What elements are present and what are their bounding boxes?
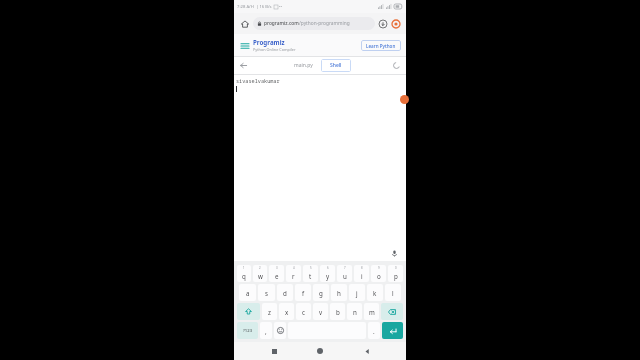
- button[interactable]: 6: [320, 265, 335, 282]
- button[interactable]: Menu: [239, 40, 250, 51]
- button[interactable]: v: [313, 303, 328, 320]
- button[interactable]: f: [295, 284, 311, 301]
- staticText: z: [268, 308, 271, 316]
- button[interactable]: 4: [286, 265, 301, 282]
- button[interactable]: 7: [337, 265, 352, 282]
- button[interactable]: l: [385, 284, 401, 301]
- staticText: 1: [243, 266, 245, 270]
- button[interactable]: Shift: [237, 303, 260, 320]
- button[interactable]: Downloads: [377, 18, 389, 30]
- staticText: 5: [310, 266, 312, 270]
- staticText: d: [283, 289, 287, 297]
- staticText: 9: [378, 266, 380, 270]
- button[interactable]: j: [349, 284, 365, 301]
- staticText: sivaselvakumar: [236, 77, 280, 84]
- staticText: u: [343, 272, 347, 280]
- staticText: s: [265, 289, 268, 297]
- button[interactable]: z: [262, 303, 277, 320]
- staticText: programiz.com: [264, 20, 299, 27]
- staticText: g: [319, 289, 323, 297]
- staticText: r: [292, 272, 295, 280]
- staticText: /python-programming: [299, 20, 350, 27]
- staticText: Programiz: [253, 38, 285, 46]
- button[interactable]: Feedback: [400, 95, 409, 104]
- button[interactable]: ,: [260, 322, 272, 339]
- button[interactable]: n: [347, 303, 362, 320]
- staticText: v: [319, 308, 323, 316]
- staticText: i: [361, 272, 363, 280]
- button[interactable]: h: [331, 284, 347, 301]
- button[interactable]: Back: [238, 60, 249, 71]
- button[interactable]: 0: [388, 265, 403, 282]
- button[interactable]: Emoji: [274, 322, 286, 339]
- button[interactable]: k: [367, 284, 383, 301]
- staticText: q: [242, 272, 246, 280]
- staticText: Learn Python: [366, 43, 396, 49]
- staticText: 0: [395, 266, 397, 270]
- staticText: c: [302, 308, 305, 316]
- staticText: t: [309, 272, 312, 280]
- staticText: ?123: [243, 328, 253, 334]
- staticText: n: [353, 308, 357, 316]
- button[interactable]: Voice input: [389, 248, 400, 259]
- button[interactable]: .: [368, 322, 380, 339]
- staticText: 3: [276, 266, 278, 270]
- staticText: e: [275, 272, 279, 280]
- staticText: | 16 B/s: [256, 4, 272, 10]
- staticText: o: [377, 272, 381, 280]
- button[interactable]: g: [313, 284, 329, 301]
- button[interactable]: 5: [303, 265, 318, 282]
- staticText: w: [258, 272, 263, 280]
- staticText: h: [337, 289, 341, 297]
- button[interactable]: c: [296, 303, 311, 320]
- button[interactable]: Enter: [382, 322, 403, 339]
- button[interactable]: 8: [354, 265, 369, 282]
- button[interactable]: b: [330, 303, 345, 320]
- staticText: f: [302, 289, 305, 297]
- button[interactable]: 1: [237, 265, 251, 282]
- staticText: l: [392, 289, 394, 297]
- button[interactable]: Home: [238, 17, 251, 30]
- staticText: 2: [259, 266, 261, 270]
- staticText: j: [356, 289, 358, 297]
- button[interactable]: Dark mode: [391, 60, 402, 71]
- button[interactable]: s: [258, 284, 275, 301]
- staticText: b: [336, 308, 340, 316]
- staticText: Shell: [330, 62, 342, 69]
- button[interactable]: Symbols: [237, 322, 258, 339]
- button[interactable]: 9: [371, 265, 386, 282]
- button[interactable]: Learn Python: [361, 40, 401, 51]
- staticText: .: [373, 327, 375, 335]
- staticText: main.py: [294, 62, 313, 69]
- staticText: 8: [361, 266, 363, 270]
- staticText: a: [246, 289, 250, 297]
- button[interactable]: d: [277, 284, 293, 301]
- button[interactable]: 3: [269, 265, 284, 282]
- staticText: 4: [293, 266, 295, 270]
- staticText: 7: [344, 266, 346, 270]
- staticText: ••: [279, 4, 283, 9]
- staticText: x: [285, 308, 289, 316]
- button[interactable]: Shell: [321, 59, 351, 72]
- staticText: 6: [327, 266, 329, 270]
- button[interactable]: Back: [360, 344, 374, 358]
- button[interactable]: Home: [313, 344, 327, 358]
- button[interactable]: m: [364, 303, 379, 320]
- staticText: k: [373, 289, 377, 297]
- button[interactable]: 2: [253, 265, 267, 282]
- button[interactable]: a: [239, 284, 256, 301]
- staticText: p: [394, 272, 398, 280]
- button[interactable]: Profile: [390, 18, 402, 30]
- staticText: y: [326, 272, 330, 280]
- button[interactable]: Recents: [267, 344, 281, 358]
- staticText: 7:28 A/H: [237, 4, 254, 10]
- button[interactable]: main.py: [288, 59, 319, 72]
- button[interactable]: programiz.com: [253, 17, 375, 30]
- staticText: ,: [265, 327, 267, 335]
- staticText: Python Online Compiler: [253, 47, 296, 52]
- staticText: m: [369, 308, 375, 316]
- button[interactable]: Backspace: [381, 303, 403, 320]
- button[interactable]: x: [279, 303, 294, 320]
